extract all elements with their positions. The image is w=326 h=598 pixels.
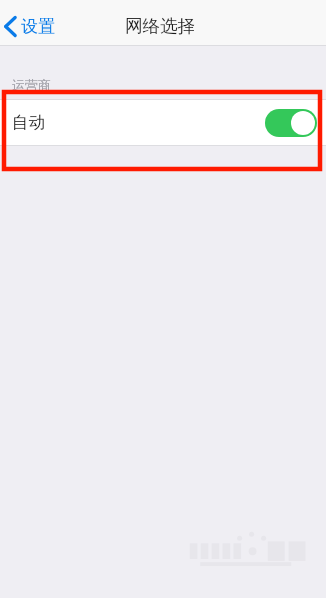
- button[interactable]: 自动: [0, 99, 326, 146]
- button[interactable]: 设置: [0, 12, 65, 41]
- staticText: 自动: [12, 112, 45, 133]
- staticText: 设置: [21, 16, 55, 37]
- staticText: 网络选择: [125, 15, 195, 37]
- button[interactable]: 自动选择网络开关: [265, 109, 317, 137]
- staticText: 运营商: [12, 77, 51, 93]
